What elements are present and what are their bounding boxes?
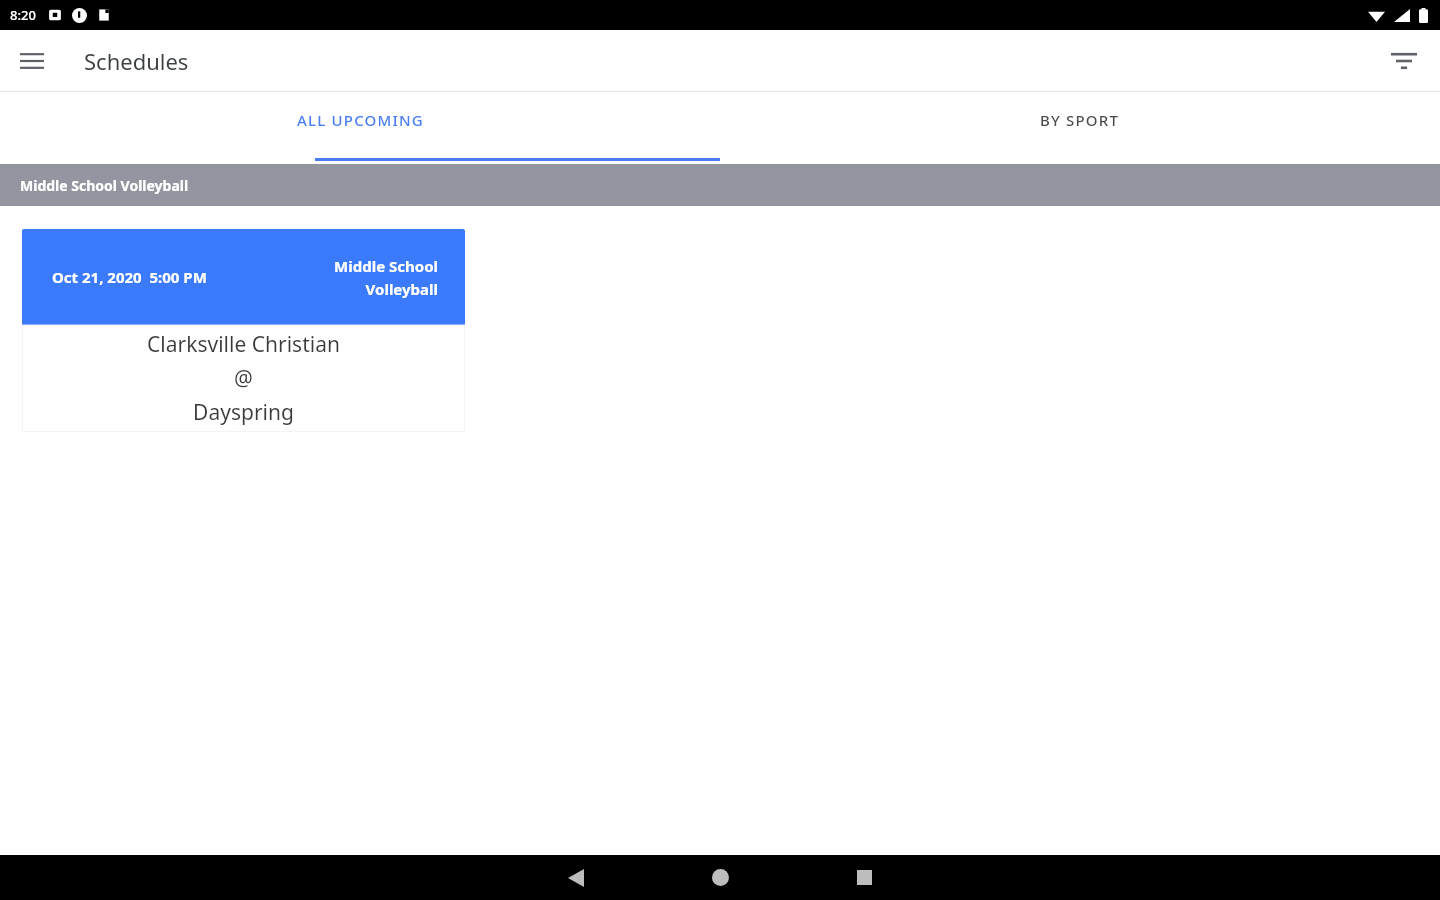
button[interactable]: Open navigation menu xyxy=(8,37,56,85)
staticText: @ xyxy=(234,364,253,393)
button[interactable]: Oct 21, 2020 5:00 PM xyxy=(22,229,465,432)
button[interactable]: BY SPORT xyxy=(720,92,1440,164)
staticText: BY SPORT xyxy=(1040,110,1120,130)
button[interactable]: Middle School Volleyball xyxy=(0,164,1440,206)
staticText: Dayspring xyxy=(193,398,294,427)
staticText: 8:20 xyxy=(10,6,36,24)
staticText: Clarksville Christian xyxy=(147,330,340,359)
staticText: Middle School Volleyball xyxy=(20,176,189,195)
button[interactable]: Back xyxy=(544,855,608,900)
button[interactable]: ALL UPCOMING xyxy=(0,92,720,164)
button[interactable]: Recent apps xyxy=(832,855,896,900)
button[interactable]: Filter xyxy=(1380,37,1428,85)
staticText: ALL UPCOMING xyxy=(297,110,424,130)
staticText: Middle School xyxy=(334,256,438,276)
button[interactable]: Home xyxy=(688,855,752,900)
staticText: Oct 21, 2020 5:00 PM xyxy=(52,267,207,287)
staticText: Volleyball xyxy=(365,279,438,299)
staticText: Schedules xyxy=(84,46,189,76)
